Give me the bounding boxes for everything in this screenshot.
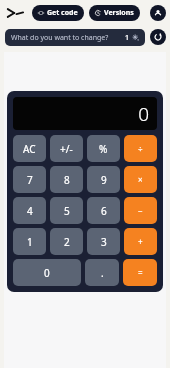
button[interactable]: 5 — [50, 197, 83, 224]
button[interactable]: Get code — [32, 5, 84, 21]
button[interactable]: % — [87, 135, 120, 162]
button[interactable]: AC — [13, 135, 46, 162]
button[interactable]: +/- — [50, 135, 83, 162]
staticText: Versions — [104, 8, 134, 18]
staticText: 7 — [27, 173, 33, 187]
button[interactable]: 8 — [50, 166, 83, 193]
staticText: 8 — [64, 173, 70, 187]
button[interactable]: Account — [150, 5, 166, 21]
button[interactable]: What do you want to change? — [5, 29, 145, 46]
staticText: 4 — [27, 204, 33, 218]
button[interactable]: . — [85, 259, 119, 286]
button[interactable]: Versions — [89, 5, 140, 21]
staticText: 0 — [44, 266, 50, 280]
button[interactable]: 1 — [13, 228, 46, 255]
staticText: 6 — [101, 204, 107, 218]
button[interactable]: 6 — [87, 197, 120, 224]
staticText: % — [99, 142, 108, 156]
staticText: + — [138, 236, 143, 247]
staticText: 1 — [125, 33, 130, 43]
staticText: 9 — [101, 173, 107, 187]
staticText: ÷ — [138, 143, 143, 154]
staticText: +/- — [60, 142, 73, 156]
button[interactable]: 9 — [87, 166, 120, 193]
button[interactable]: 4 — [13, 197, 46, 224]
staticText: AC — [23, 142, 36, 156]
button[interactable]: 2 — [50, 228, 83, 255]
button[interactable]: 7 — [13, 166, 46, 193]
button[interactable]: − — [124, 197, 157, 224]
button[interactable]: + — [124, 228, 157, 255]
button[interactable]: 3 — [87, 228, 120, 255]
button[interactable]: ÷ — [124, 135, 157, 162]
staticText: 0 — [138, 101, 149, 127]
button[interactable]: 0 — [13, 259, 81, 286]
staticText: − — [138, 205, 143, 216]
staticText: 3 — [101, 235, 107, 249]
staticText: 5 — [64, 204, 70, 218]
staticText: Get code — [47, 8, 78, 18]
staticText: × — [138, 174, 143, 185]
button[interactable]: Refresh — [150, 29, 166, 45]
staticText: = — [138, 267, 143, 278]
button[interactable]: Home — [4, 2, 26, 24]
staticText: 1 — [27, 235, 33, 249]
staticText: 2 — [64, 235, 70, 249]
staticText: What do you want to change? — [11, 33, 109, 43]
button[interactable]: = — [123, 259, 157, 286]
staticText: . — [101, 266, 104, 280]
button[interactable]: × — [124, 166, 157, 193]
